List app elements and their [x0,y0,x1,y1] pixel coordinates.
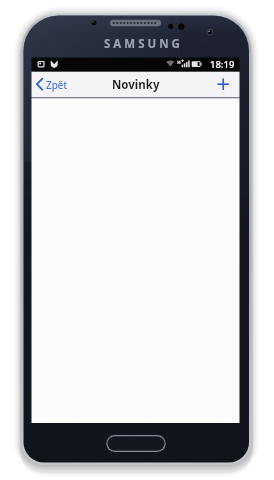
staticText: 18:19 [210,58,235,71]
button[interactable] [106,434,166,452]
button[interactable]: Zpět [33,74,70,95]
staticText: Novinky [112,77,160,93]
button[interactable] [212,74,236,95]
staticText: Zpět [46,78,68,92]
staticText: SAMSUNG [104,36,183,50]
